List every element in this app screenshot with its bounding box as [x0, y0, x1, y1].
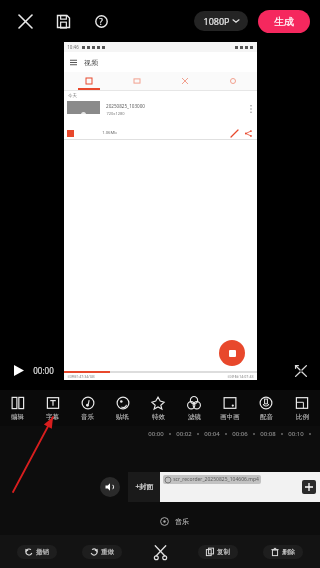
staticText: 720x1280	[106, 111, 125, 116]
staticText: 1.06Mb	[102, 130, 117, 136]
button[interactable]: 字幕	[35, 390, 70, 426]
staticText: ?	[99, 16, 103, 27]
staticText: 1080P	[203, 15, 230, 27]
staticText: 视频	[84, 58, 98, 67]
button[interactable]: Record	[219, 340, 245, 366]
button[interactable]: 20250825_103000	[64, 101, 257, 127]
button[interactable]: 编辑	[0, 390, 35, 426]
staticText: scr_recorder_20250825_104606.mp4	[173, 476, 259, 483]
staticText: 已用时:47:34/GB	[67, 374, 95, 379]
button[interactable]: 删除	[263, 545, 303, 559]
button[interactable]: More	[245, 101, 257, 127]
button[interactable]: Fullscreen	[290, 360, 312, 382]
button[interactable]: Help	[86, 6, 116, 36]
button[interactable]: 撤销	[17, 545, 57, 559]
staticText: 复制	[217, 548, 230, 556]
staticText: 配音	[260, 413, 273, 421]
staticText: 滤镜	[188, 413, 201, 421]
staticText: 重做	[101, 548, 114, 556]
staticText: 画中画	[220, 413, 240, 421]
button[interactable]: 复制	[198, 545, 238, 559]
button[interactable]: 滤镜	[176, 390, 212, 426]
staticText: 音乐	[175, 517, 189, 526]
button[interactable]	[161, 72, 209, 90]
staticText: 10:46	[67, 44, 79, 50]
button[interactable]	[64, 72, 113, 90]
staticText: 已录制:14:07:43	[227, 374, 254, 379]
staticText: 字幕	[46, 413, 59, 421]
button[interactable]: Cut	[147, 539, 173, 565]
staticText: 00:00	[33, 365, 54, 376]
staticText: 撤销	[36, 548, 49, 556]
button[interactable]: 配音	[248, 390, 284, 426]
button[interactable]: Close	[10, 6, 40, 36]
staticText: 生成	[274, 15, 294, 28]
button[interactable]: Add clip	[302, 480, 316, 494]
staticText: 00:00	[148, 430, 164, 438]
staticText: 20250825_103000	[106, 103, 145, 109]
button[interactable]: +封面	[128, 472, 160, 502]
staticText: 删除	[282, 548, 295, 556]
staticText: 贴纸	[116, 413, 129, 421]
button[interactable]	[113, 72, 161, 90]
staticText: 00:04	[204, 430, 220, 438]
staticText: 00:08	[260, 430, 276, 438]
button[interactable]: 重做	[82, 545, 122, 559]
button[interactable]: 比例	[284, 390, 320, 426]
staticText: 00:06	[232, 430, 248, 438]
staticText: 编辑	[11, 413, 24, 421]
button[interactable]: Save	[48, 6, 78, 36]
staticText: 比例	[296, 413, 309, 421]
staticText: 今天	[68, 93, 77, 99]
button[interactable]	[231, 130, 238, 137]
button[interactable]: 特效	[140, 390, 176, 426]
staticText: 音乐	[81, 413, 94, 421]
staticText: 00:02	[176, 430, 192, 438]
button[interactable]: Mute	[100, 477, 120, 497]
button[interactable]	[209, 72, 257, 90]
staticText: 00:10	[288, 430, 304, 438]
button[interactable]: 画中画	[212, 390, 248, 426]
button[interactable]: 生成	[258, 10, 310, 33]
button[interactable]: 贴纸	[105, 390, 140, 426]
button[interactable]: 1080P	[194, 11, 248, 31]
staticText: 特效	[152, 413, 165, 421]
button[interactable]: Play	[6, 358, 30, 382]
button[interactable]: 音乐	[70, 390, 105, 426]
button[interactable]	[245, 130, 252, 137]
staticText: +封面	[135, 482, 154, 492]
